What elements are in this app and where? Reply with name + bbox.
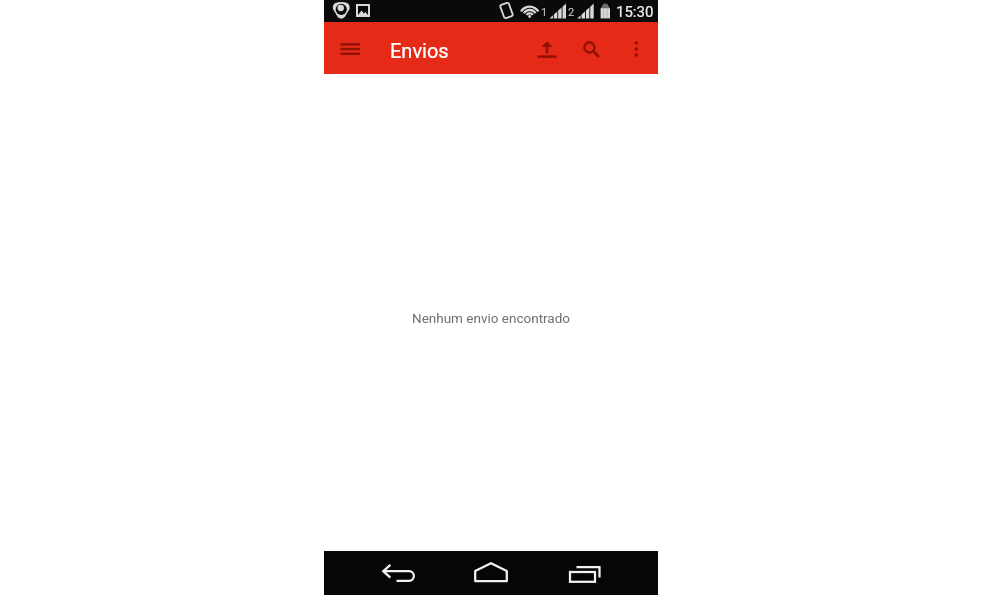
button[interactable]: Recent apps: [563, 558, 607, 588]
staticText: Nenhum envio encontrado: [412, 310, 571, 326]
staticText: 1: [541, 6, 548, 19]
button[interactable]: Back: [375, 558, 415, 588]
button[interactable]: Search: [567, 26, 609, 70]
staticText: 15:30: [616, 3, 654, 21]
button[interactable]: Upload: [525, 26, 567, 70]
button[interactable]: More options: [615, 26, 657, 70]
staticText: Envios: [390, 39, 449, 62]
button[interactable]: Home: [468, 558, 508, 588]
button[interactable]: Menu: [330, 26, 372, 70]
staticText: 2: [568, 6, 575, 19]
